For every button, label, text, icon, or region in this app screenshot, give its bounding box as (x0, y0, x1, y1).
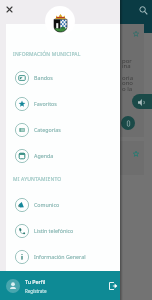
button[interactable]: Listen (132, 94, 152, 109)
button[interactable]: Comunico (6, 195, 120, 215)
button[interactable]: Información General (6, 247, 120, 267)
staticText: Favoritos (34, 100, 57, 107)
button[interactable]: Close menu (0, 0, 18, 18)
staticText: Regístrate (25, 288, 47, 294)
button[interactable]: Agenda (6, 146, 120, 166)
staticText: Categorías (34, 126, 61, 133)
staticText: Listín telefónico (34, 227, 74, 234)
staticText: oria (122, 74, 134, 82)
button[interactable]: Bandos (6, 68, 120, 88)
staticText: por (122, 57, 132, 65)
staticText: o la (122, 85, 133, 93)
staticText: Bandos (34, 74, 53, 81)
staticText: MI AYUNTAMIENTO (13, 176, 62, 183)
staticText: Comunico (34, 201, 60, 208)
button[interactable]: Search (136, 3, 150, 17)
staticText: Tu Perfil (25, 278, 46, 285)
staticText: ono (122, 79, 133, 87)
button[interactable]: Categorías (6, 120, 120, 140)
button[interactable]: Municipality crest (45, 6, 75, 36)
button[interactable]: Listín telefónico (6, 221, 120, 241)
staticText: ina (122, 62, 131, 70)
staticText: Agenda (34, 152, 54, 159)
staticText: Información General (34, 253, 86, 260)
button[interactable]: Tu Perfil (6, 276, 47, 295)
button[interactable]: Log out (105, 278, 120, 293)
button[interactable]: Report an incident (121, 116, 135, 130)
button[interactable]: Favoritos (6, 94, 120, 114)
staticText: INFORMACIÓN MUNICIPAL (13, 51, 81, 58)
